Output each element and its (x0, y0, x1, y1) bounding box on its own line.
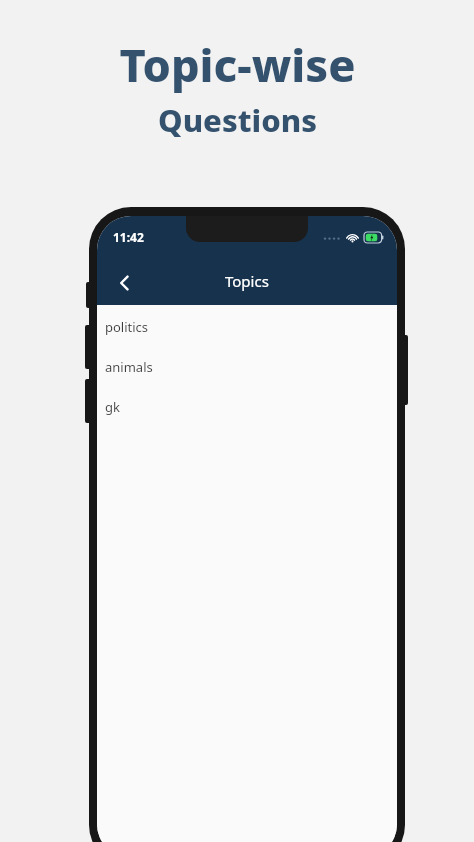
staticText: 11:42 (113, 229, 144, 245)
staticText: Questions (158, 99, 317, 141)
staticText: Topics (225, 271, 269, 291)
staticText: politics (105, 318, 149, 336)
staticText: gk (105, 398, 120, 416)
staticText: animals (105, 358, 153, 376)
button[interactable]: Back (103, 261, 147, 305)
staticText: Topic-wise (119, 34, 356, 95)
button[interactable]: politics (97, 307, 397, 347)
button[interactable]: gk (97, 387, 397, 427)
button[interactable]: animals (97, 347, 397, 387)
